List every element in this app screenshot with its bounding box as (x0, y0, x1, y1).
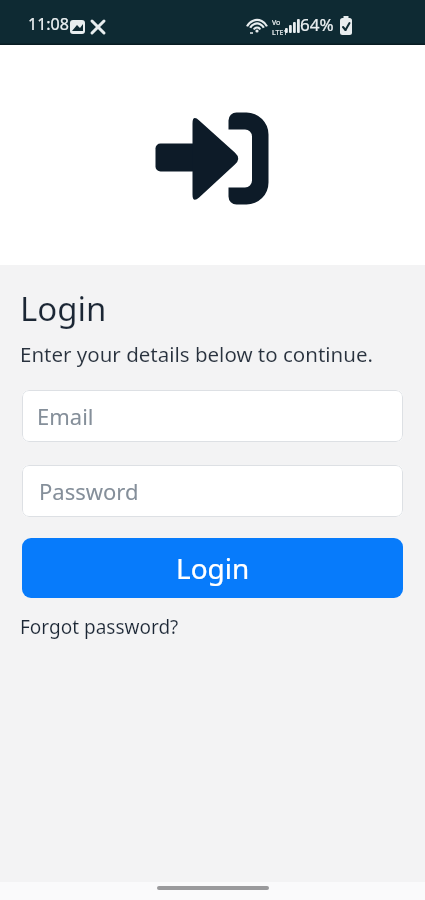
staticText: Vo (272, 18, 281, 28)
staticText: LTE1 (272, 28, 288, 38)
staticText: 64% (300, 13, 334, 36)
button[interactable]: Email (22, 390, 403, 442)
button[interactable]: Login (22, 538, 403, 598)
staticText: Enter your details below to continue. (20, 340, 373, 368)
staticText: Login (20, 286, 107, 331)
button[interactable]: Password (22, 465, 403, 517)
button[interactable]: Forgot password? (20, 614, 179, 640)
staticText: Login (176, 549, 250, 587)
staticText: Password (39, 476, 139, 506)
staticText: 11:08 (28, 13, 69, 35)
staticText: Email (37, 401, 94, 431)
